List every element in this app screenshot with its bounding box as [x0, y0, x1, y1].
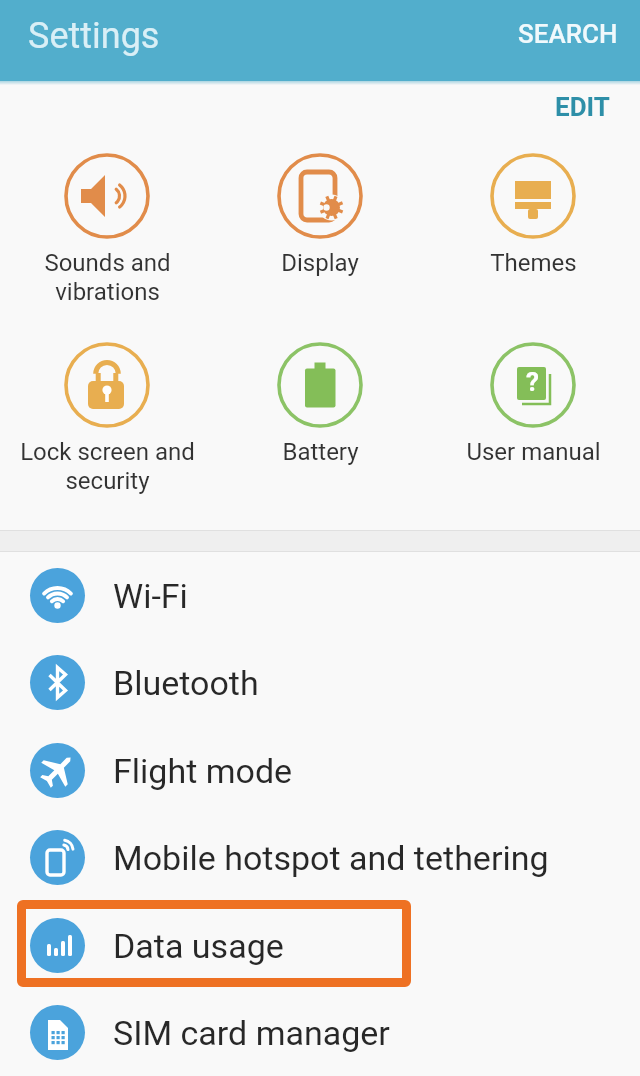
staticText: User manual [466, 438, 601, 466]
staticText: Lock screen and security [20, 438, 195, 495]
button[interactable]: Bluetooth [0, 639, 640, 726]
staticText: SEARCH [518, 19, 618, 49]
button[interactable]: Themes [433, 153, 633, 277]
button[interactable]: EDIT [555, 92, 610, 122]
staticText: Flight mode [113, 751, 293, 791]
button[interactable]: Battery [220, 342, 420, 466]
staticText: EDIT [555, 92, 610, 122]
staticText: Themes [490, 249, 577, 277]
button[interactable]: Wi-Fi [0, 552, 640, 639]
button[interactable]: Sounds and vibrations [7, 153, 207, 306]
staticText: Display [281, 249, 359, 277]
staticText: Data usage [113, 926, 284, 966]
staticText: Mobile hotspot and tethering [113, 838, 549, 878]
button[interactable]: SEARCH [518, 19, 618, 49]
button[interactable]: Lock screen and security [7, 342, 207, 495]
button[interactable]: Flight mode [0, 727, 640, 814]
staticText: Sounds and vibrations [44, 249, 171, 306]
button[interactable]: Display [220, 153, 420, 277]
button[interactable]: ? [433, 342, 633, 466]
button[interactable]: SIM card manager [0, 989, 640, 1076]
staticText: Settings [28, 15, 160, 57]
button[interactable]: Mobile hotspot and tethering [0, 814, 640, 901]
staticText: Wi-Fi [113, 576, 188, 616]
button[interactable]: Data usage [0, 902, 640, 989]
staticText: Battery [282, 438, 359, 466]
staticText: SIM card manager [113, 1013, 390, 1053]
staticText: ? [526, 367, 539, 397]
staticText: Bluetooth [113, 663, 259, 703]
